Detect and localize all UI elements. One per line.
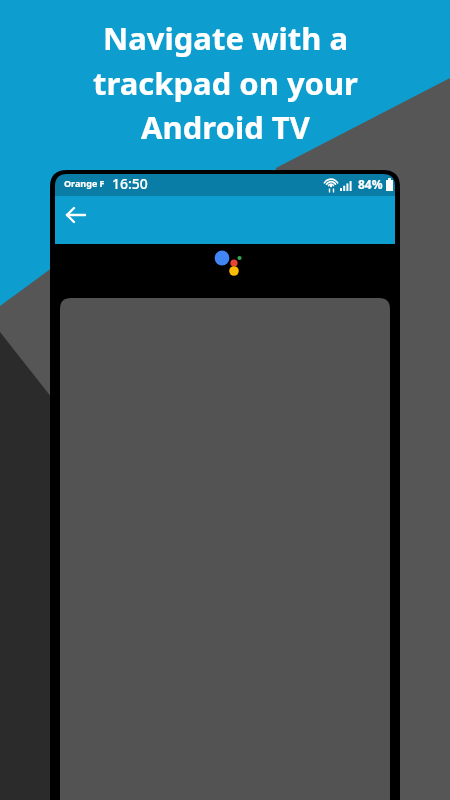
staticText: 16:50: [112, 174, 148, 193]
staticText: 84%: [358, 176, 383, 192]
staticText: Orange F: [64, 177, 105, 189]
staticText: Navigate with a trackpad on your Android…: [93, 17, 358, 148]
button[interactable]: Back: [58, 197, 94, 233]
